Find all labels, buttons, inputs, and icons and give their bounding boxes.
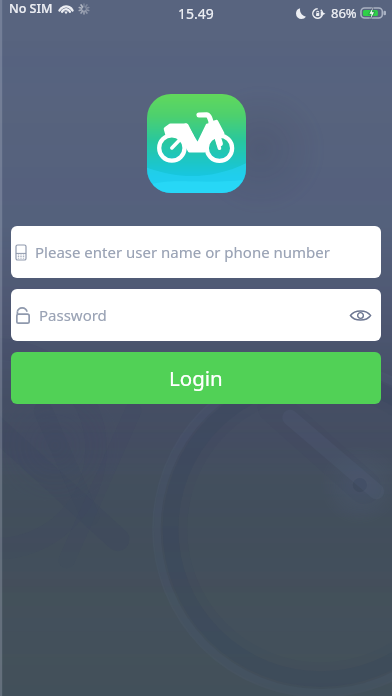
staticText: Login: [169, 364, 223, 392]
button[interactable]: Login: [11, 352, 381, 404]
staticText: 86%: [331, 4, 357, 22]
button[interactable]: Password: [11, 289, 381, 341]
staticText: Password: [39, 305, 107, 325]
staticText: Please enter user name or phone number: [35, 242, 330, 262]
button[interactable]: Show password: [347, 302, 373, 328]
button[interactable]: Please enter user name or phone number: [11, 226, 381, 278]
staticText: No SIM: [9, 0, 53, 17]
staticText: 15.49: [178, 4, 214, 23]
